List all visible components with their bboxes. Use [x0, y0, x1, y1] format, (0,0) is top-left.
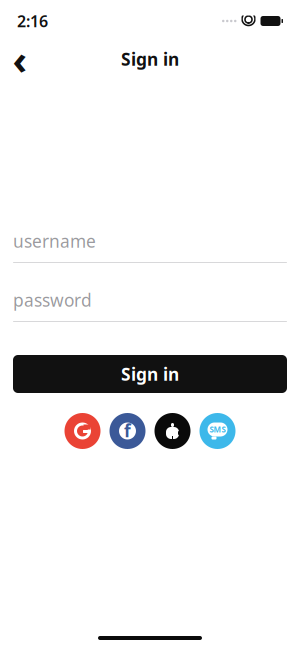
button[interactable]: Sign in with Facebook: [109, 413, 145, 449]
button[interactable]: Sign in with SMS: [199, 413, 235, 449]
staticText: 2:16: [17, 10, 48, 32]
staticText: Sign in: [121, 47, 179, 70]
button[interactable]: Back: [0, 39, 40, 79]
button[interactable]: Sign in with Google: [64, 413, 100, 449]
staticText: f: [124, 419, 131, 442]
button[interactable]: Sign in: [13, 355, 287, 393]
staticText: Sign in: [121, 362, 179, 385]
staticText: username: [13, 229, 96, 252]
staticText: password: [13, 288, 92, 311]
staticText: SMS: [209, 424, 225, 435]
button[interactable]: Sign in with Apple: [154, 413, 190, 449]
staticText: ‹: [12, 32, 27, 85]
